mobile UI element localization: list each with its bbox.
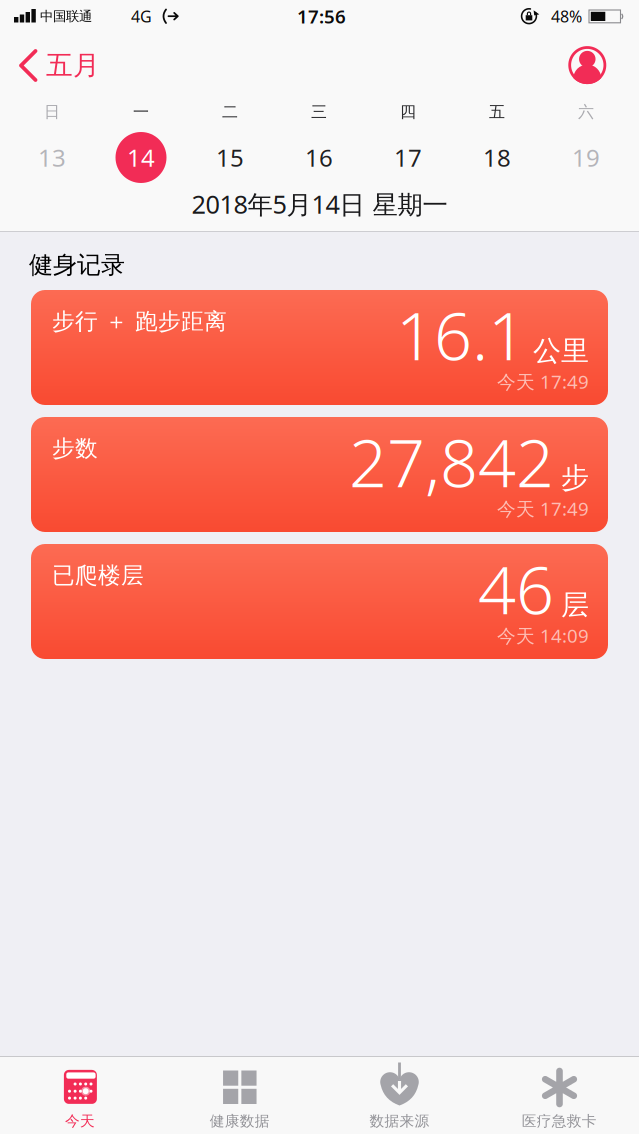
staticText: 今天 17:49 [497,369,589,394]
staticText: 14 [127,142,155,173]
staticText: 五月 [46,49,100,82]
button[interactable]: 14 [96,125,185,189]
staticText: 层 [561,588,589,622]
button[interactable]: 健康数据 [160,1056,320,1134]
staticText: 六 [578,102,594,122]
staticText: 27,842 [349,417,554,505]
button[interactable]: 步行 ＋ 跑步距离 [31,290,608,405]
button[interactable]: 已爬楼层 [31,544,608,659]
staticText: 2018年5月14日 星期一 [191,187,447,221]
staticText: 医疗急救卡 [522,1112,597,1130]
staticText: 三 [311,102,327,122]
button[interactable]: 16 [274,125,363,189]
staticText: 16.1 [396,290,526,378]
staticText: 一 [133,102,149,122]
staticText: 日 [44,102,60,122]
staticText: 四 [400,102,416,122]
staticText: 17:56 [297,4,346,29]
button[interactable]: 15 [185,125,274,189]
staticText: 今天 14:09 [497,623,589,648]
staticText: 步数 [52,434,98,462]
staticText: 中国联通 [40,8,92,24]
staticText: 13 [38,142,66,173]
staticText: 数据来源 [369,1112,429,1130]
staticText: 已爬楼层 [52,561,144,589]
staticText: 步行 ＋ 跑步距离 [52,307,227,335]
staticText: 健康数据 [210,1112,270,1130]
button[interactable]: 13 [7,125,96,189]
button[interactable]: 18 [452,125,541,189]
staticText: 今天 17:49 [497,496,589,521]
staticText: 16 [305,142,333,173]
staticText: 15 [216,142,244,173]
button[interactable]: 数据来源 [319,1056,479,1134]
button[interactable]: 19 [541,125,630,189]
button[interactable]: 五月 [10,43,114,87]
staticText: 18 [483,142,511,173]
staticText: 46 [478,544,554,632]
staticText: 五 [489,102,505,122]
staticText: 健身记录 [29,250,125,280]
staticText: 二 [222,102,238,122]
button[interactable] [568,46,606,84]
button[interactable]: 17 [363,125,452,189]
staticText: 公里 [533,334,589,368]
staticText: 19 [572,142,600,173]
staticText: 48% [551,6,582,27]
staticText: 今天 [65,1112,95,1130]
staticText: 17 [394,142,422,173]
button[interactable]: 医疗急救卡 [479,1056,639,1134]
staticText: 4G [131,6,152,27]
staticText: 步 [561,461,589,495]
button[interactable]: 今天 [0,1056,160,1134]
button[interactable]: 步数 [31,417,608,532]
